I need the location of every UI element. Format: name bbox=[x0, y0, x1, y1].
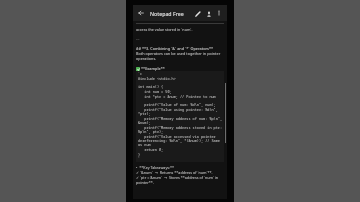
staticText: int num = 50; bbox=[138, 89, 222, 94]
button[interactable]: Voice input bbox=[203, 8, 214, 19]
staticText: } bbox=[138, 152, 222, 157]
staticText: printf("Memory address stored in ptr: %p… bbox=[138, 125, 222, 134]
staticText: int *ptr = &num; // Pointer to num bbox=[138, 94, 222, 99]
staticText: printf("Value accessed via pointer deref… bbox=[138, 134, 222, 147]
staticText: printf("Value of num: %d\n", num); bbox=[138, 102, 222, 107]
button[interactable]: More options bbox=[214, 8, 224, 18]
staticText: return 0; bbox=[138, 147, 222, 152]
staticText: int main() { bbox=[138, 84, 222, 89]
staticText: Both operators can be used together in p… bbox=[136, 51, 224, 61]
staticText: ✓ `ptr = &num` → Stores **address of `nu… bbox=[136, 175, 224, 185]
staticText: `c bbox=[138, 72, 222, 76]
staticText: access the value stored in `num`. bbox=[136, 27, 224, 32]
button[interactable]: Back bbox=[136, 8, 146, 18]
staticText: Notepad Free bbox=[150, 10, 184, 17]
staticText: **Example** bbox=[141, 66, 165, 71]
button[interactable]: Edit bbox=[192, 8, 203, 19]
staticText: printf("Value using pointer: %d\n", *ptr… bbox=[138, 107, 222, 116]
staticText: #include <stdio.h> bbox=[138, 76, 222, 81]
staticText: ## **3. Combining `&` and `*` Operators*… bbox=[136, 46, 224, 51]
staticText: printf("Memory address of num: %p\n", &n… bbox=[138, 116, 222, 125]
staticText: • **Key Takeaways:** bbox=[136, 165, 224, 170]
staticText: ✓ `&num` → Returns **address of `num`**. bbox=[136, 170, 224, 175]
